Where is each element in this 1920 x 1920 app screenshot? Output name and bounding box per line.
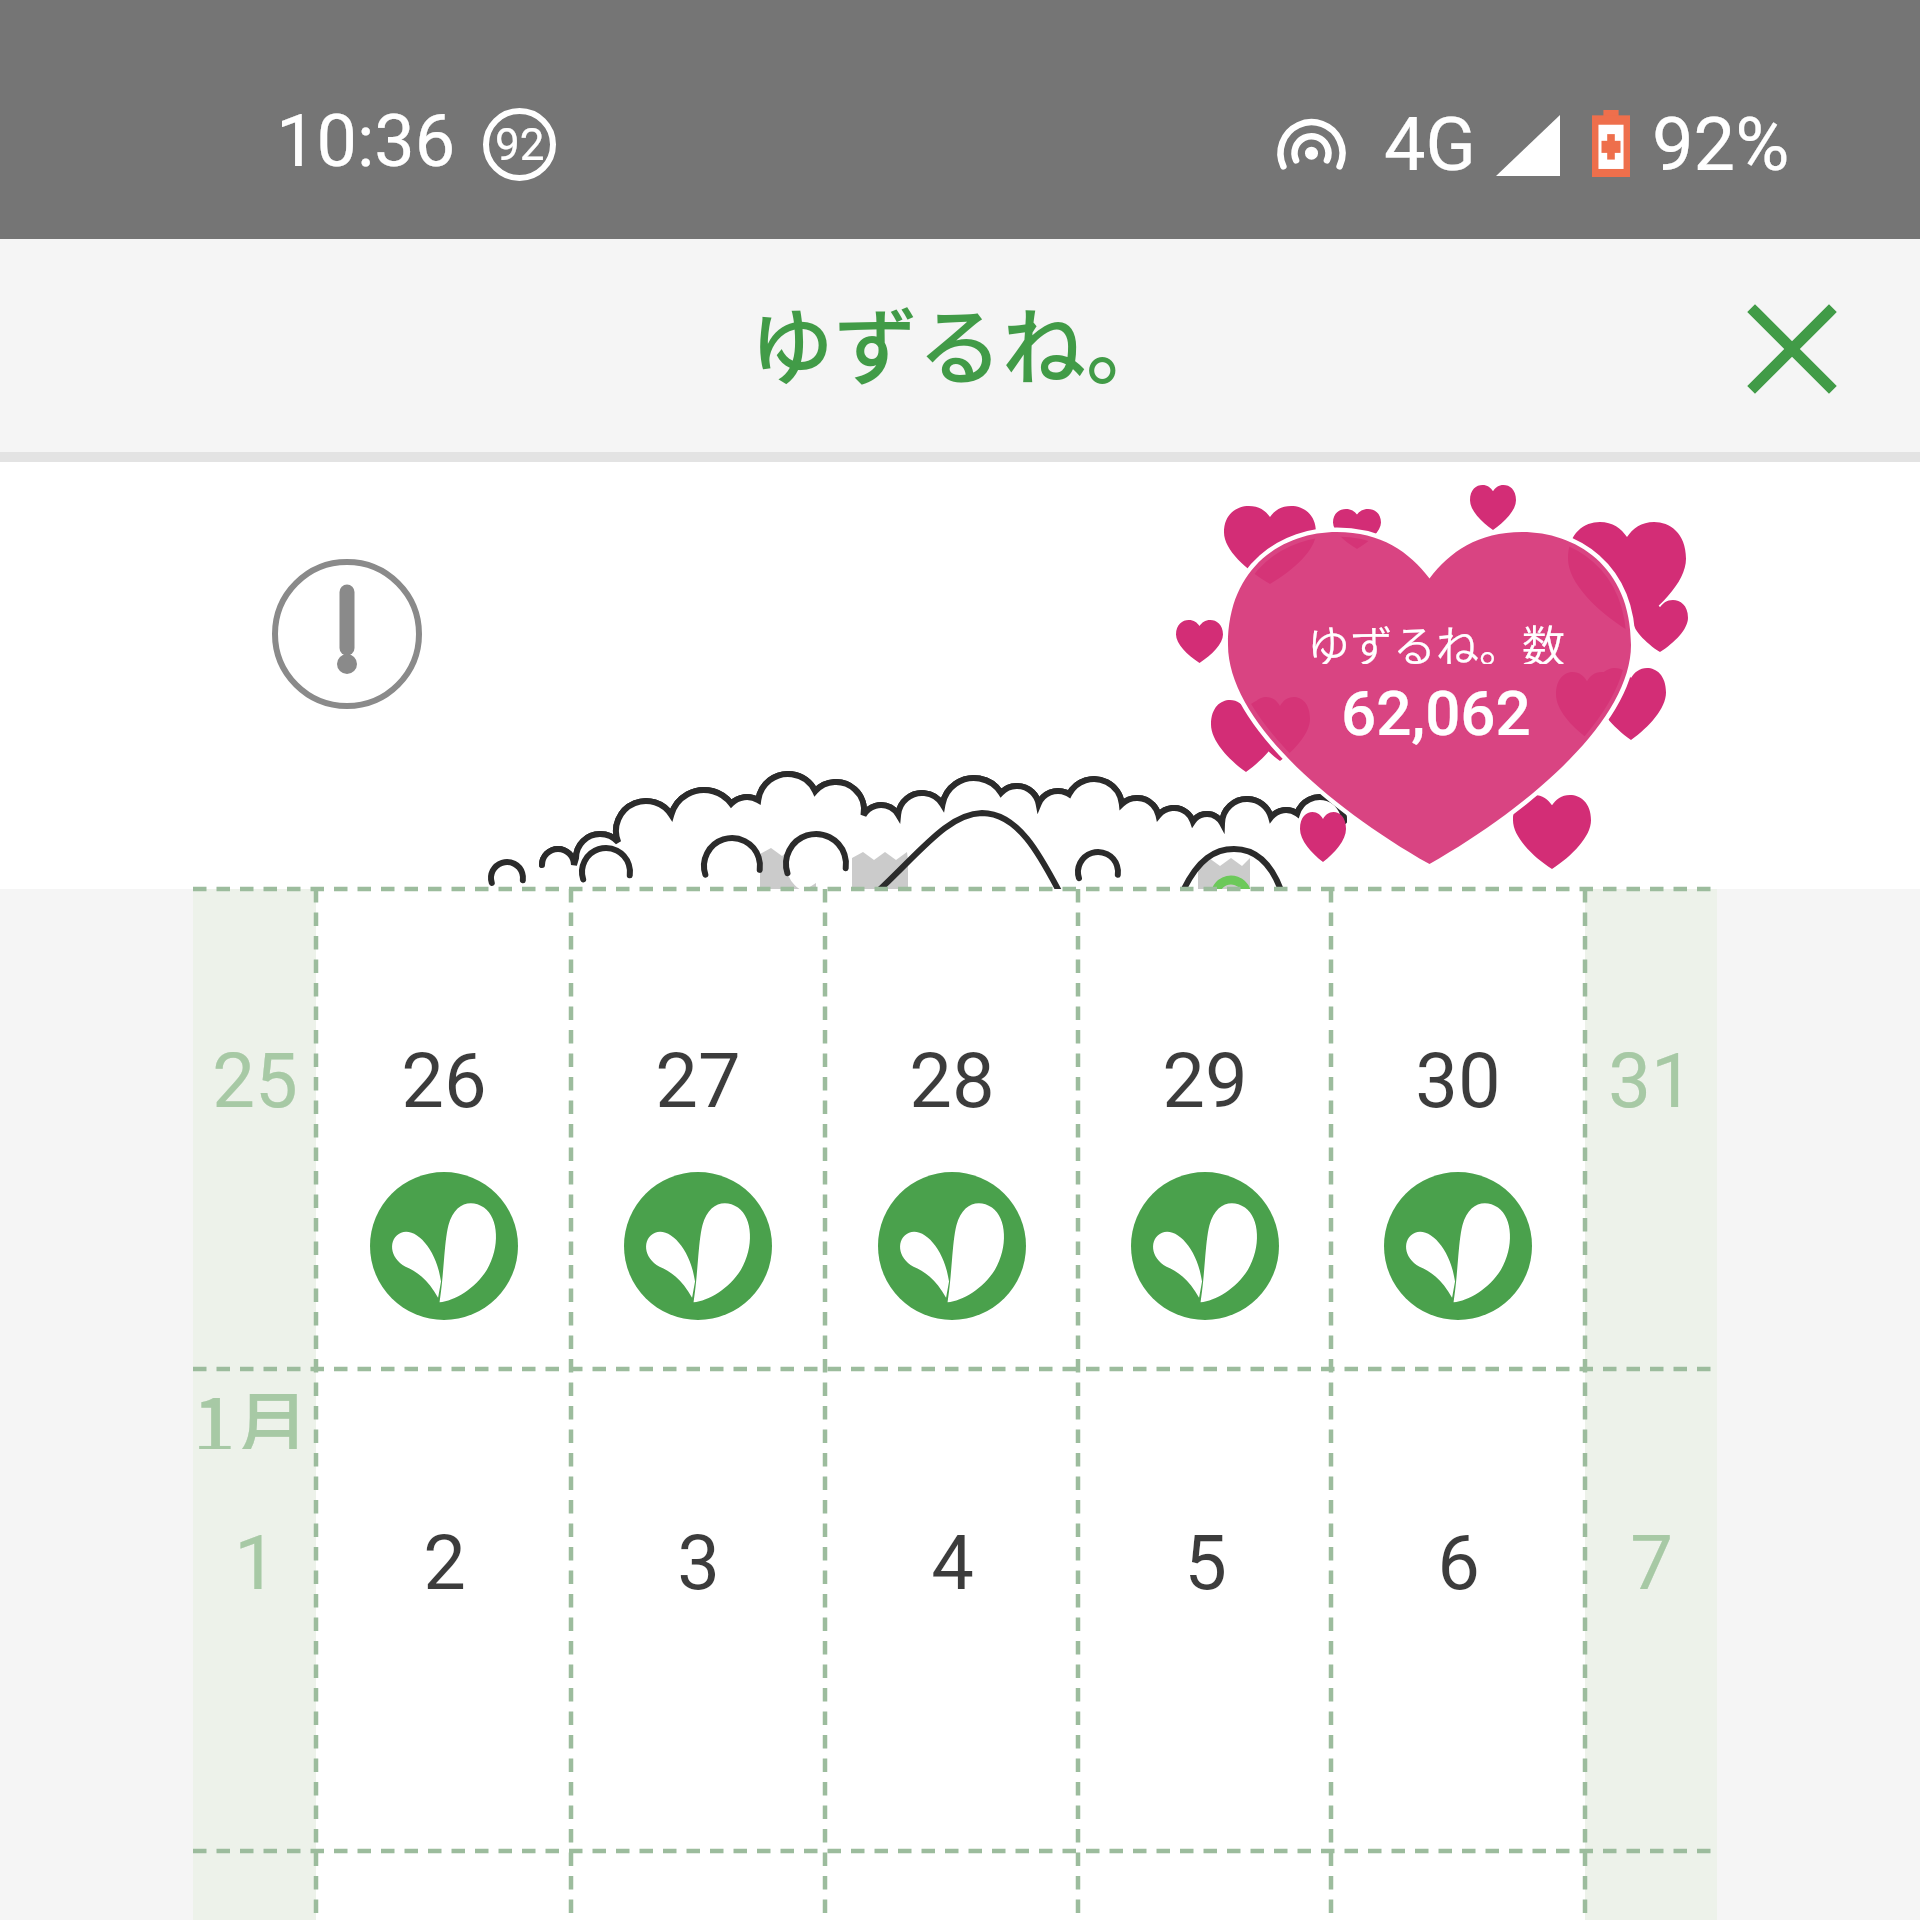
staticText: 28	[909, 1036, 995, 1125]
button[interactable]	[1331, 889, 1585, 1370]
staticText: 6	[1437, 1518, 1480, 1607]
staticText: 3	[677, 1518, 720, 1607]
button[interactable]	[1331, 1370, 1585, 1851]
staticText: ゆずるね。	[750, 281, 1171, 403]
staticText: 92	[495, 119, 545, 171]
staticText: 92%	[1652, 101, 1790, 188]
button[interactable]	[316, 889, 571, 1370]
staticText: 25	[212, 1036, 298, 1125]
button[interactable]	[1585, 889, 1717, 1370]
staticText: 2	[423, 1518, 466, 1607]
button[interactable]: Yuzurune mark	[370, 1172, 518, 1320]
button[interactable]	[825, 889, 1078, 1370]
button[interactable]	[825, 1370, 1078, 1851]
button[interactable]	[1078, 889, 1331, 1370]
button[interactable]	[316, 1370, 571, 1851]
staticText: 4	[931, 1518, 974, 1607]
staticText: 26	[401, 1036, 487, 1125]
staticText: 62,062	[1341, 677, 1531, 747]
staticText: 7	[1630, 1518, 1673, 1607]
staticText: 10:36	[276, 99, 456, 183]
button[interactable]	[571, 1370, 825, 1851]
button[interactable]: Information	[272, 559, 422, 709]
staticText: 4G	[1384, 101, 1476, 188]
staticText: 1月	[193, 1367, 310, 1449]
staticText: 31	[1608, 1036, 1694, 1125]
button[interactable]: Yuzurune mark	[1384, 1172, 1532, 1320]
button[interactable]: Yuzurune mark	[878, 1172, 1026, 1320]
button[interactable]	[193, 1370, 316, 1851]
button[interactable]	[193, 889, 316, 1370]
staticText: 5	[1184, 1518, 1227, 1607]
staticText: 1	[234, 1518, 277, 1607]
button[interactable]	[1078, 1370, 1331, 1851]
button[interactable]: Yuzurune mark	[624, 1172, 772, 1320]
staticText: 29	[1162, 1036, 1248, 1125]
button[interactable]	[1585, 1370, 1717, 1851]
button[interactable]: Close	[1727, 284, 1857, 414]
staticText: 27	[655, 1036, 741, 1125]
button[interactable]: Yuzurune mark	[1131, 1172, 1279, 1320]
staticText: 30	[1415, 1036, 1501, 1125]
button[interactable]	[571, 889, 825, 1370]
staticText: ゆずるね。数	[1307, 612, 1565, 664]
